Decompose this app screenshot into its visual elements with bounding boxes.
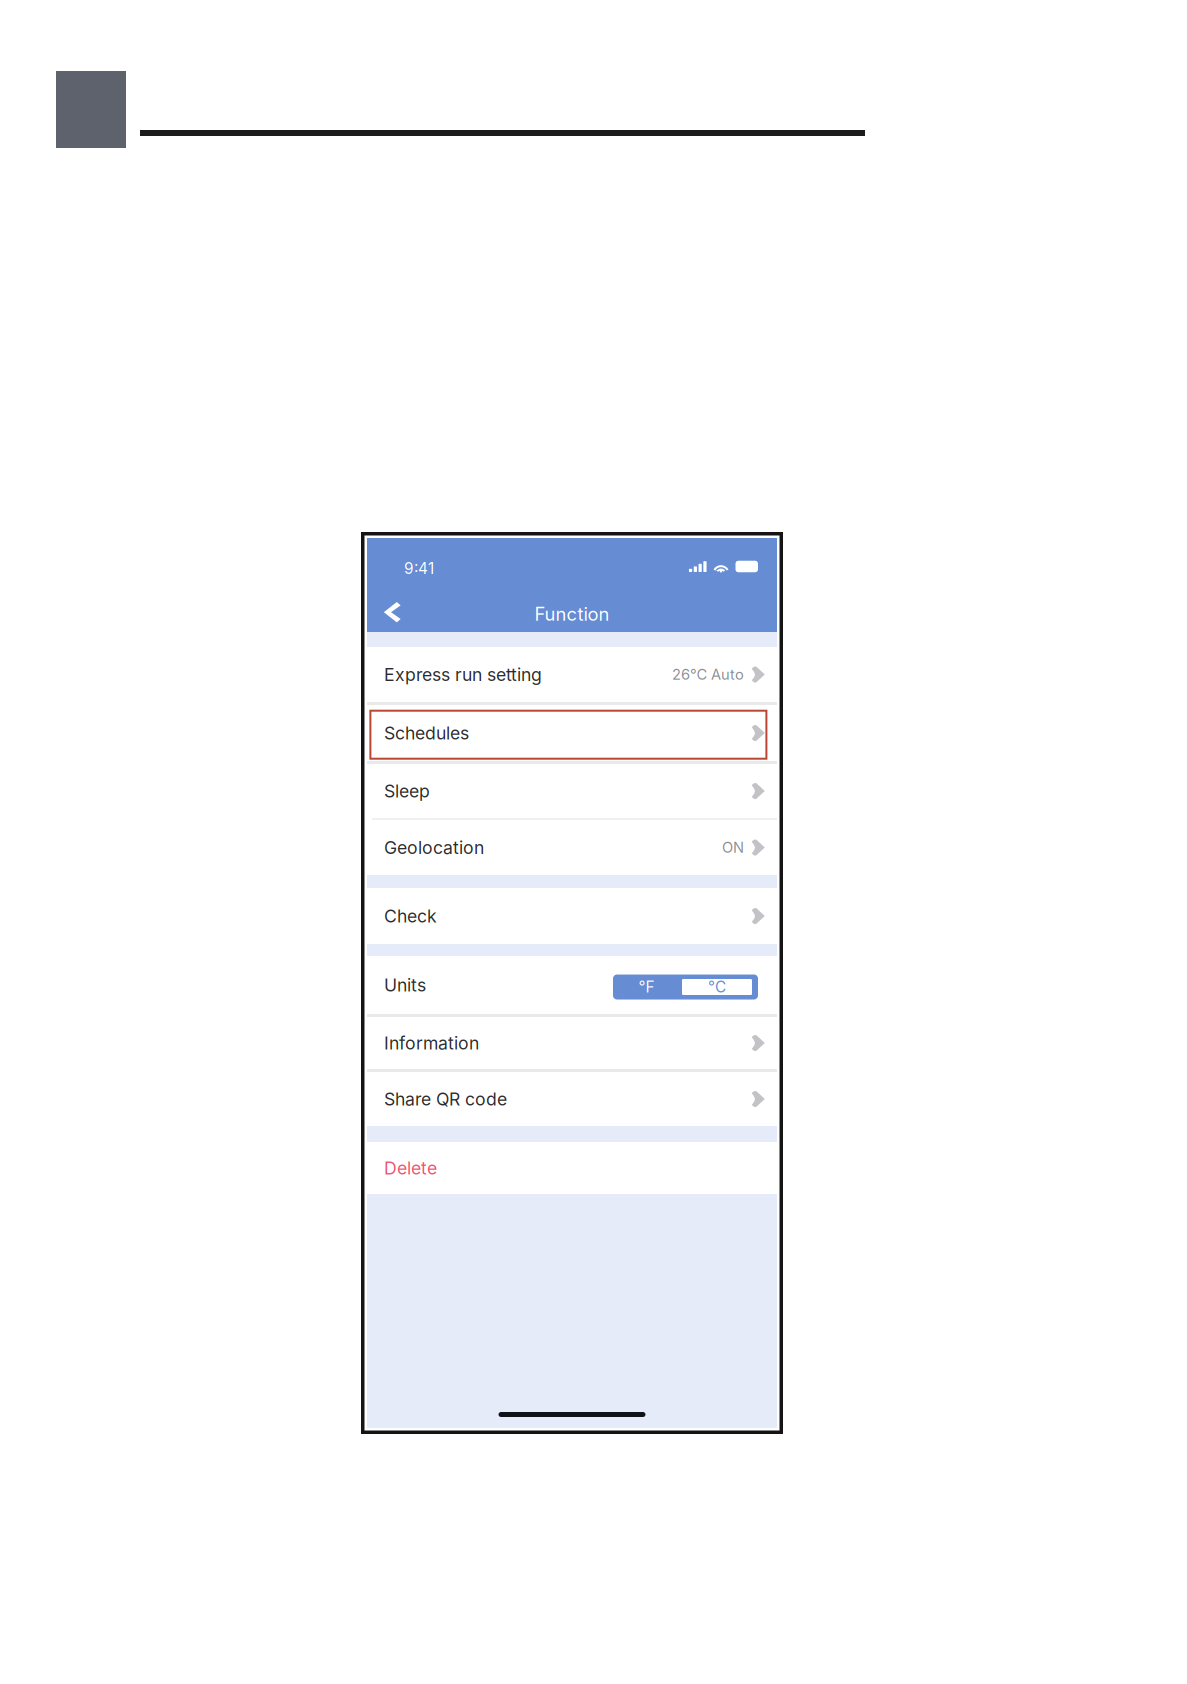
staticText: Sleep bbox=[384, 780, 430, 802]
button[interactable]: Geolocation bbox=[367, 820, 777, 875]
staticText: Units bbox=[384, 974, 426, 996]
button[interactable]: Temperature units bbox=[613, 974, 758, 999]
button[interactable]: Check bbox=[367, 888, 777, 944]
button[interactable]: Sleep bbox=[367, 764, 777, 820]
button[interactable]: Share QR code bbox=[367, 1072, 777, 1126]
staticText: Information bbox=[384, 1032, 479, 1054]
staticText: Check bbox=[384, 905, 437, 927]
staticText: 9:41 bbox=[404, 559, 434, 578]
button[interactable]: Information bbox=[367, 1017, 777, 1072]
staticText: Function bbox=[534, 603, 609, 625]
staticText: °F bbox=[638, 978, 654, 996]
staticText: Schedules bbox=[384, 722, 469, 744]
button[interactable]: Express run setting bbox=[367, 647, 777, 705]
staticText: Express run setting bbox=[384, 664, 542, 685]
staticText: Delete bbox=[384, 1157, 437, 1179]
staticText: Geolocation bbox=[384, 837, 484, 858]
staticText: °C bbox=[708, 978, 726, 996]
staticText: ON bbox=[722, 839, 744, 856]
staticText: 26℃ Auto bbox=[672, 666, 744, 683]
staticText: Share QR code bbox=[384, 1088, 507, 1110]
button[interactable]: Schedules bbox=[367, 705, 777, 764]
button[interactable]: Delete bbox=[367, 1142, 777, 1194]
button[interactable]: Back bbox=[367, 591, 413, 630]
